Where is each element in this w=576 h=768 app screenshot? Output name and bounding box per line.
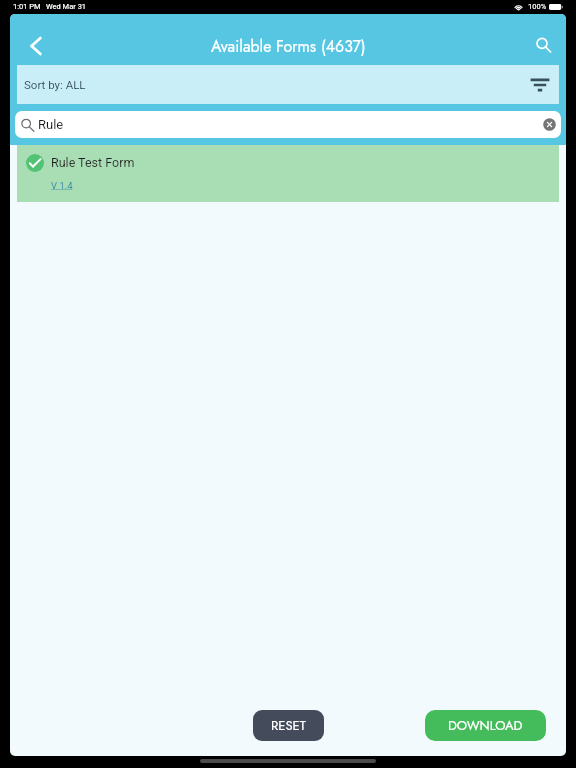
button[interactable]: Sort by: ALL (17, 65, 559, 104)
staticText: Sort by: ALL (24, 78, 86, 91)
button[interactable]: RESET (253, 710, 324, 741)
button[interactable]: Search (525, 27, 563, 65)
staticText: Wed Mar 31 (46, 2, 87, 11)
button[interactable]: Back (17, 27, 55, 65)
staticText: Available Forms (4637) (211, 35, 366, 58)
staticText: 1:01 PM (13, 2, 41, 11)
button[interactable]: Filter (525, 70, 555, 100)
staticText: Rule (38, 117, 64, 132)
button[interactable]: Rule (15, 111, 561, 138)
button[interactable]: V 1.4 (51, 180, 73, 191)
staticText: DOWNLOAD (448, 716, 523, 735)
button[interactable]: Rule Test Form (17, 145, 559, 202)
button[interactable]: DOWNLOAD (425, 710, 546, 741)
button[interactable]: Clear search (538, 113, 560, 135)
staticText: 100% (528, 2, 547, 11)
staticText: RESET (271, 716, 306, 735)
staticText: Rule Test Form (51, 155, 135, 170)
